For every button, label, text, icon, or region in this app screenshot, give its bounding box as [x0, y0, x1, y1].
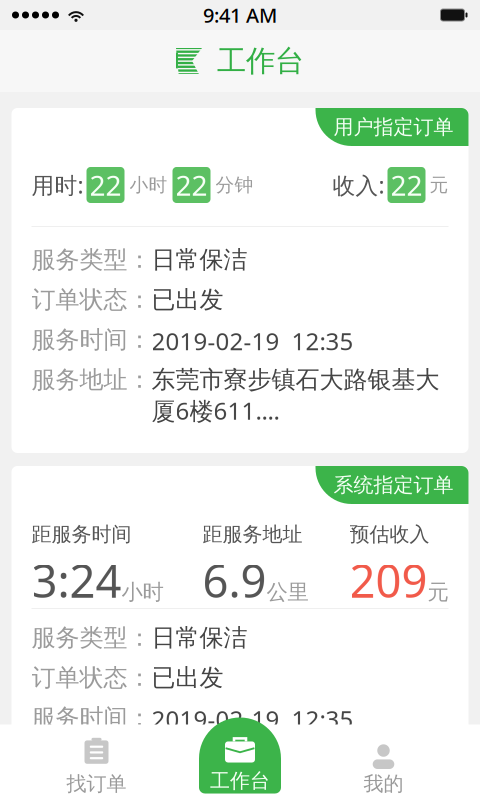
- staticText: 2019-02-19 12:35: [151, 703, 353, 735]
- staticText: 订单状态：: [31, 663, 151, 692]
- button[interactable]: 工作台: [199, 717, 281, 793]
- staticText: 服务地址：: [31, 743, 151, 772]
- staticText: 收入:: [332, 170, 384, 200]
- staticText: 元: [429, 173, 448, 196]
- button[interactable]: 我的: [287, 724, 480, 800]
- staticText: 已出发: [151, 285, 223, 314]
- staticText: 22: [390, 166, 422, 204]
- staticText: 工作台: [210, 768, 270, 793]
- staticText: 东莞市寮步镇石大路银基大厦6楼611....: [151, 365, 439, 426]
- staticText: 工作台: [217, 43, 304, 79]
- staticText: 服务类型：: [31, 623, 151, 652]
- staticText: 22: [175, 166, 207, 204]
- staticText: 服务时间：: [31, 703, 151, 732]
- staticText: 日常保洁: [151, 623, 247, 652]
- staticText: 6.9: [202, 550, 266, 610]
- staticText: 服务类型：: [31, 245, 151, 274]
- staticText: 服务地址：: [31, 365, 151, 394]
- staticText: 用时:: [31, 170, 83, 200]
- button[interactable]: 找订单: [0, 724, 193, 800]
- staticText: 预估收入: [349, 522, 429, 547]
- staticText: 公里: [266, 579, 308, 605]
- staticText: 日常保洁: [151, 245, 247, 274]
- staticText: 22: [89, 166, 121, 204]
- staticText: 系统指定订单: [333, 473, 453, 497]
- staticText: 3:24: [31, 550, 121, 610]
- staticText: 元: [427, 579, 448, 605]
- staticText: 已出发: [151, 663, 223, 692]
- staticText: 209: [349, 550, 427, 610]
- staticText: 服务时间：: [31, 325, 151, 354]
- staticText: 距服务时间: [31, 522, 131, 547]
- staticText: 用户指定订单: [333, 115, 453, 139]
- staticText: 订单状态：: [31, 285, 151, 314]
- staticText: 我的: [363, 771, 403, 796]
- staticText: 东莞市寮步镇石大路银基大厦6楼611....: [151, 743, 439, 800]
- staticText: 2019-02-19 12:35: [151, 325, 353, 357]
- staticText: 找订单: [66, 771, 126, 796]
- staticText: 小时: [121, 579, 163, 605]
- staticText: 小时: [129, 173, 167, 196]
- staticText: 距服务地址: [202, 522, 302, 547]
- staticText: 9:41 AM: [203, 2, 277, 28]
- staticText: 分钟: [215, 173, 253, 196]
